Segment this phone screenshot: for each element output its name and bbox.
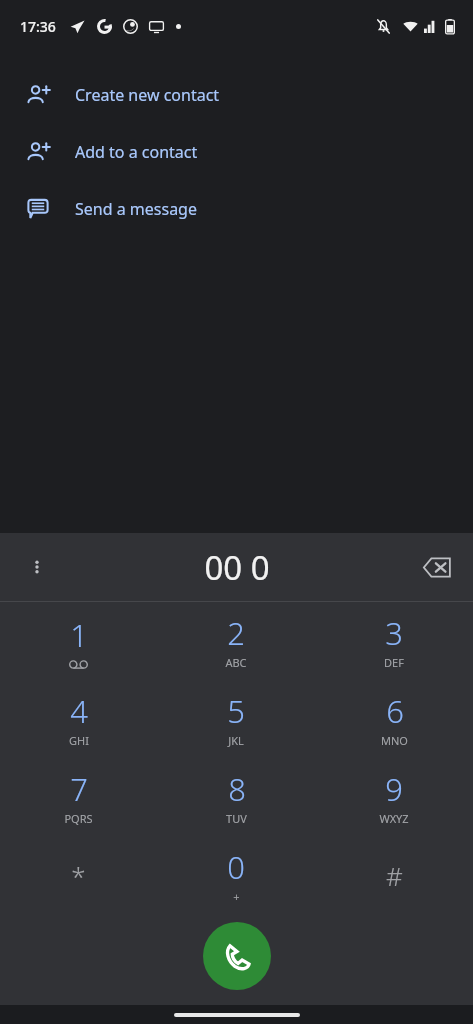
staticText: 4 [70,690,88,732]
button[interactable]: Create new contact [0,66,473,123]
button[interactable]: 4 [0,680,157,758]
staticText: DEF [384,655,404,670]
staticText: 9 [385,768,403,810]
button[interactable]: Backspace [413,543,461,591]
staticText: GHI [69,733,89,748]
staticText: 1 [70,614,88,656]
staticText: 8 [228,768,246,810]
staticText: # [386,858,403,893]
button[interactable]: 6 [315,680,473,758]
staticText: 0 [227,846,245,888]
button[interactable]: 5 [157,680,315,758]
button[interactable]: More options [14,544,60,590]
button[interactable]: Call [203,922,271,990]
staticText: Add to a contact [75,141,198,163]
staticText: MNO [381,733,408,748]
button[interactable]: Send a message [0,180,473,237]
staticText: JKL [228,733,244,748]
button[interactable]: 1 [0,602,157,680]
button[interactable]: Add to a contact [0,123,473,180]
button[interactable]: 8 [157,758,315,836]
staticText: 2 [227,612,245,654]
staticText: 3 [385,612,403,654]
staticText: 5 [227,690,245,732]
staticText: ABC [225,655,247,670]
staticText: Create new contact [75,84,220,106]
button[interactable]: 7 [0,758,157,836]
button[interactable]: 2 [157,602,315,680]
staticText: TUV [226,811,247,826]
staticText: * [71,858,86,893]
staticText: PQRS [64,811,93,826]
button[interactable]: # [315,836,473,914]
staticText: WXYZ [379,811,409,826]
staticText: Send a message [75,198,197,220]
button[interactable]: 3 [315,602,473,680]
staticText: 7 [70,768,88,810]
staticText: 6 [386,690,404,732]
button[interactable]: 9 [315,758,473,836]
staticText: 00 0 [204,545,270,590]
button[interactable]: 0 [157,836,315,914]
button[interactable]: * [0,836,157,914]
staticText: + [233,889,240,904]
staticText: 17:36 [20,17,56,36]
